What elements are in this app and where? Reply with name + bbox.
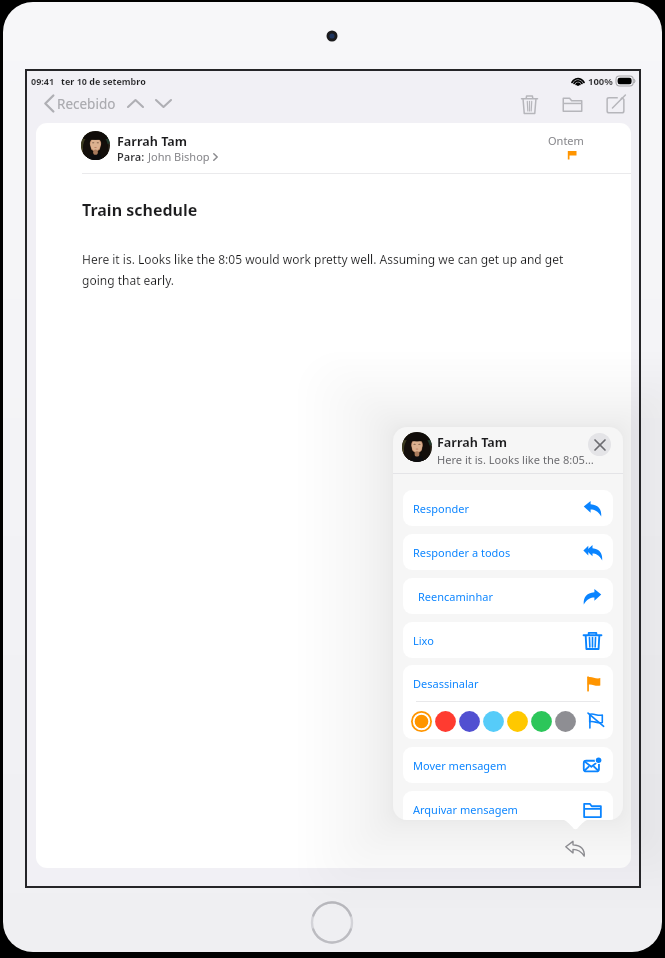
staticText: ter 10 de setembro	[61, 75, 146, 87]
staticText: Para:	[117, 149, 148, 164]
button[interactable]: Flag colour	[529, 709, 553, 733]
staticText: Recebido	[57, 95, 116, 113]
button[interactable]: Close	[588, 433, 611, 456]
button[interactable]: Arquivar mensagem	[403, 791, 613, 820]
staticText: Desassinalar	[413, 676, 479, 691]
button[interactable]: Responder a todos	[403, 534, 613, 570]
button[interactable]: Previous message	[123, 91, 148, 116]
button[interactable]: Flag colour	[433, 709, 457, 733]
staticText: Ontem	[548, 133, 584, 148]
button[interactable]: Compose	[600, 89, 630, 119]
button[interactable]: Move to folder	[557, 89, 587, 119]
button[interactable]: Flag colour	[409, 709, 433, 733]
button[interactable]: Recebido	[41, 90, 119, 117]
staticText: Here it is. Looks like the 8:05 would wo…	[82, 251, 572, 288]
staticText: Responder	[413, 501, 470, 516]
staticText: 100%	[588, 75, 613, 88]
button[interactable]: Flag colour	[505, 709, 529, 733]
staticText: Lixo	[413, 633, 434, 648]
button[interactable]: Responder	[403, 490, 613, 526]
button[interactable]: Flag colour	[553, 709, 577, 733]
button[interactable]: Desassinalar	[403, 665, 613, 701]
staticText: John Bishop	[148, 149, 210, 164]
staticText: Mover mensagem	[413, 758, 507, 773]
staticText: Responder a todos	[413, 545, 511, 560]
button[interactable]: Mover mensagem	[403, 747, 613, 783]
button[interactable]: Delete	[514, 89, 544, 119]
button[interactable]: Flag colour	[457, 709, 481, 733]
staticText: Farrah Tam	[437, 434, 508, 451]
button[interactable]: Lixo	[403, 622, 613, 658]
staticText: Here it is. Looks like the 8:05…	[437, 452, 594, 467]
staticText: Reencaminhar	[418, 589, 493, 604]
button[interactable]: Remove flag	[585, 710, 606, 731]
staticText: Arquivar mensagem	[413, 802, 518, 817]
button[interactable]: Flag colour	[481, 709, 505, 733]
staticText: Train schedule	[82, 199, 198, 221]
staticText: 09:41	[31, 75, 55, 87]
button[interactable]: Reencaminhar	[403, 578, 613, 614]
staticText: Farrah Tam	[117, 133, 188, 150]
button[interactable]: Next message	[151, 91, 176, 116]
